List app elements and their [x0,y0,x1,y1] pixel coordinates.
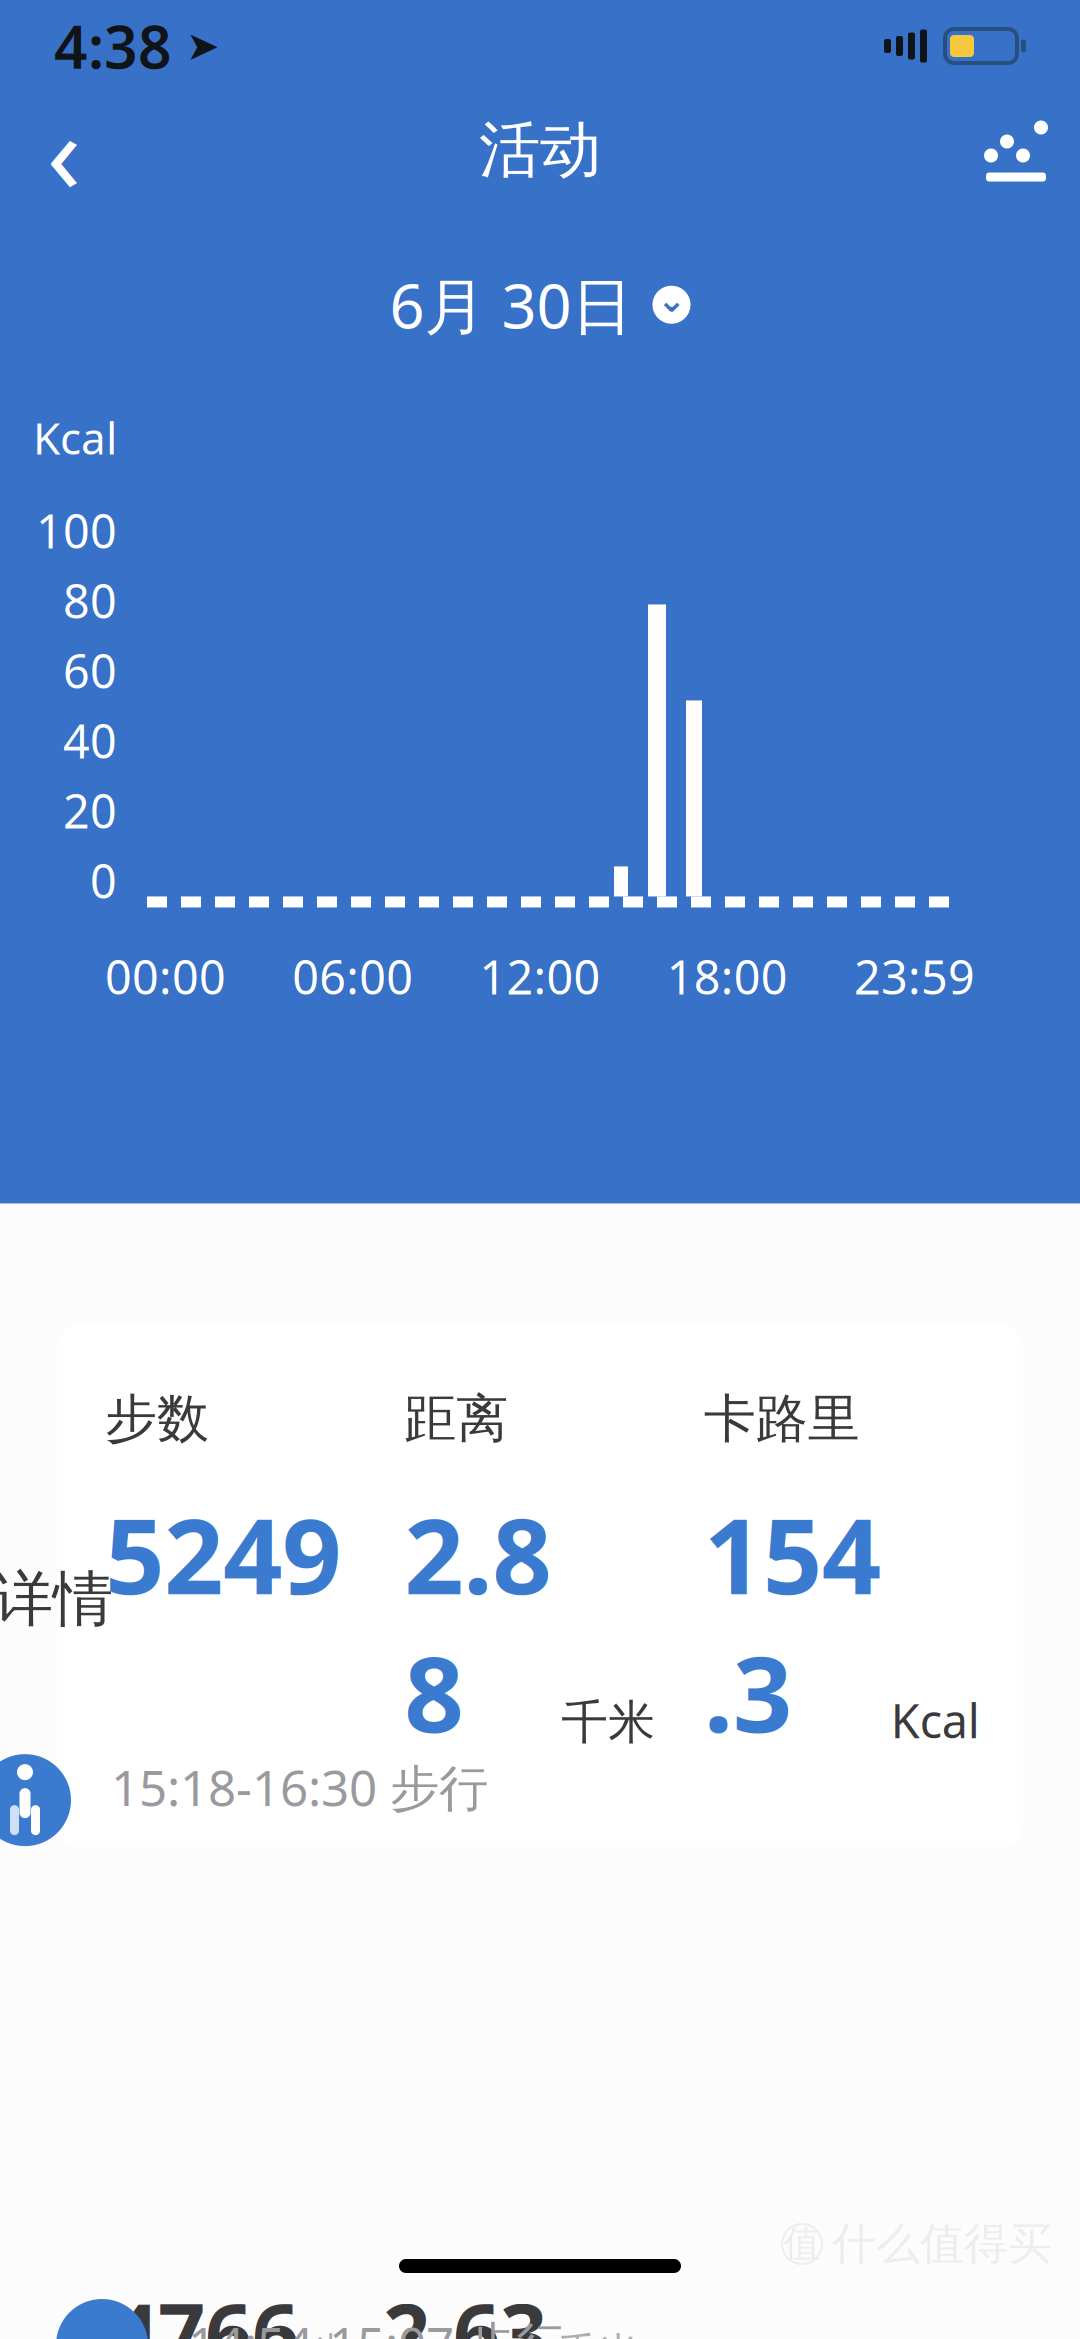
staticText: 6月 30日 [389,264,632,345]
staticText: 14:54-15:07 步行 [188,2311,565,2339]
staticText: ⌄ [657,280,686,319]
button[interactable]: 6月 30日 [365,252,714,357]
button[interactable]: Statistics [968,102,1064,198]
staticText: 60 [63,639,117,701]
staticText: 2.63 [383,2277,547,2339]
staticText: 什么值得买 [832,2217,1052,2271]
staticText: 06:00 [292,945,413,1007]
staticText: 卡路里 [704,1387,860,1451]
staticText: Kcal [33,408,117,467]
staticText: 4:38 [54,7,172,85]
staticText: 0 [90,849,117,911]
staticText: 00:00 [105,945,226,1007]
staticText: 详情 [0,1562,113,1636]
staticText: 千米 [561,1694,655,1751]
staticText: 15:18-16:30 步行 [111,1754,488,1820]
staticText: 千米 [557,2328,639,2339]
staticText: 100 [36,499,117,561]
staticText: 2.88 [404,1485,551,1761]
staticText: 20 [63,779,117,841]
staticText: 活动 [479,112,601,188]
staticText: 18:00 [667,945,788,1007]
staticText: 4766 [111,2277,299,2339]
button[interactable]: 15:18-16:30 步行 [0,1754,1080,2339]
staticText: 80 [63,569,117,631]
button[interactable]: Back [16,102,112,198]
staticText: ➤ [172,23,220,69]
staticText: ‹ [46,76,81,224]
staticText: 距离 [404,1387,508,1451]
staticText: 5249 [105,1485,341,1623]
staticText: 154.3 [704,1485,881,1761]
staticText: 12:00 [479,945,600,1007]
staticText: 23:59 [854,945,975,1007]
staticText: 值 [783,2221,820,2267]
staticText: Kcal [891,1689,980,1751]
staticText: 步 [309,2328,350,2339]
staticText: 40 [63,709,117,771]
staticText: 步数 [105,1387,209,1451]
